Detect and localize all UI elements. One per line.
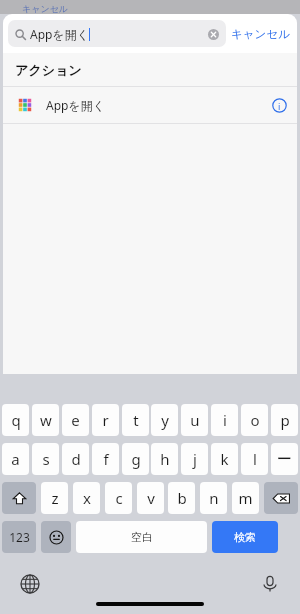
- staticText: z: [51, 488, 59, 508]
- button[interactable]: g: [122, 443, 149, 475]
- button[interactable]: t: [122, 404, 149, 436]
- staticText: m: [238, 488, 253, 508]
- staticText: y: [161, 410, 169, 430]
- button[interactable]: 123: [2, 521, 36, 553]
- button[interactable]: d: [62, 443, 89, 475]
- staticText: w: [40, 410, 52, 430]
- staticText: u: [190, 410, 200, 430]
- staticText: c: [115, 488, 123, 508]
- button[interactable]: k: [211, 443, 238, 475]
- button[interactable]: r: [92, 404, 119, 436]
- button[interactable]: s: [32, 443, 59, 475]
- staticText: 検索: [234, 530, 256, 544]
- staticText: a: [11, 449, 20, 469]
- button[interactable]: c: [105, 482, 132, 514]
- button[interactable]: y: [151, 404, 178, 436]
- button[interactable]: o: [241, 404, 268, 436]
- staticText: 空白: [131, 530, 153, 544]
- staticText: r: [102, 410, 109, 430]
- button[interactable]: m: [232, 482, 259, 514]
- button[interactable]: f: [92, 443, 119, 475]
- staticText: i: [278, 100, 281, 112]
- staticText: v: [147, 488, 155, 508]
- button[interactable]: q: [2, 404, 29, 436]
- staticText: i: [223, 410, 227, 430]
- staticText: o: [250, 410, 260, 430]
- staticText: d: [71, 449, 81, 469]
- staticText: n: [209, 488, 219, 508]
- staticText: h: [160, 449, 170, 469]
- button[interactable]: w: [32, 404, 59, 436]
- staticText: ー: [277, 450, 292, 469]
- button[interactable]: キャンセル: [231, 27, 290, 41]
- staticText: b: [177, 488, 187, 508]
- staticText: Appを開く: [46, 97, 105, 113]
- button[interactable]: ー: [271, 443, 298, 475]
- button[interactable]: Emoji: [41, 521, 71, 553]
- button[interactable]: l: [241, 443, 268, 475]
- staticText: キャンセル: [231, 27, 290, 41]
- button[interactable]: b: [168, 482, 195, 514]
- staticText: q: [11, 410, 21, 430]
- staticText: s: [42, 449, 50, 469]
- staticText: j: [193, 449, 197, 469]
- button[interactable]: j: [181, 443, 208, 475]
- staticText: g: [131, 449, 141, 469]
- button[interactable]: u: [181, 404, 208, 436]
- button[interactable]: n: [200, 482, 227, 514]
- button[interactable]: Clear text: [208, 29, 219, 40]
- staticText: l: [253, 449, 257, 469]
- button[interactable]: x: [73, 482, 100, 514]
- button[interactable]: z: [41, 482, 68, 514]
- button[interactable]: 空白: [76, 521, 207, 553]
- staticText: e: [71, 410, 80, 430]
- staticText: 123: [9, 529, 30, 545]
- staticText: k: [220, 449, 229, 469]
- staticText: アクション: [15, 62, 82, 78]
- button[interactable]: Information: [272, 98, 287, 113]
- button[interactable]: Change keyboard language: [20, 574, 40, 594]
- button[interactable]: h: [151, 443, 178, 475]
- staticText: キャンセル: [22, 3, 69, 14]
- button[interactable]: Appを開く: [8, 20, 226, 47]
- button[interactable]: Appを開く: [3, 87, 297, 123]
- button[interactable]: v: [137, 482, 164, 514]
- staticText: Appを開く: [30, 26, 89, 42]
- button[interactable]: i: [211, 404, 238, 436]
- button[interactable]: Backspace: [264, 482, 298, 514]
- button[interactable]: p: [271, 404, 298, 436]
- button[interactable]: a: [2, 443, 29, 475]
- staticText: t: [133, 410, 139, 430]
- button[interactable]: Voice input: [260, 574, 280, 594]
- staticText: x: [83, 488, 91, 508]
- staticText: p: [280, 410, 290, 430]
- staticText: f: [103, 449, 109, 469]
- button[interactable]: e: [62, 404, 89, 436]
- button[interactable]: Shift: [2, 482, 36, 514]
- button[interactable]: 検索: [212, 521, 278, 553]
